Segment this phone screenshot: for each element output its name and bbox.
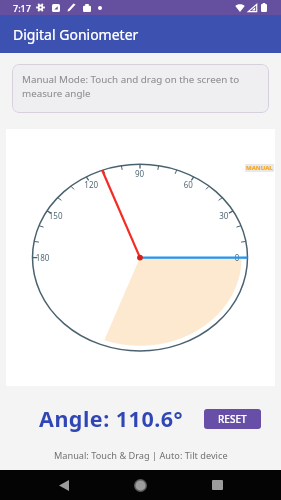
staticText: RESET	[218, 412, 247, 426]
button[interactable]: Recent apps	[179, 470, 256, 500]
button[interactable]: Home	[102, 470, 179, 500]
staticText: 7:17	[13, 2, 31, 14]
staticText: MANUAL	[246, 164, 273, 172]
button[interactable]: RESET	[204, 409, 261, 429]
staticText: Digital Goniometer	[13, 25, 139, 44]
button[interactable]: Manual Mode: Touch and drag on the scree…	[12, 64, 269, 113]
staticText: Angle: 110.6°	[39, 404, 184, 433]
staticText: Manual: Touch & Drag | Auto: Tilt device	[54, 449, 228, 462]
staticText: Manual Mode: Touch and drag on the scree…	[22, 73, 257, 99]
button[interactable]: Back	[25, 470, 102, 500]
